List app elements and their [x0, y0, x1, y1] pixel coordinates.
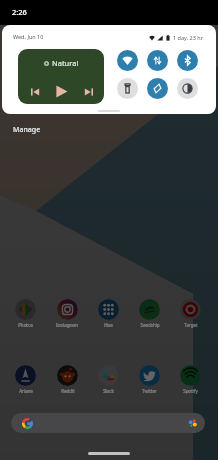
button[interactable]: Twitter — [139, 365, 160, 386]
staticText: Spotify — [183, 388, 198, 394]
button[interactable]: Natural — [18, 49, 104, 104]
button[interactable]: Play — [53, 83, 70, 100]
button[interactable]: Wi-Fi — [117, 50, 138, 71]
button[interactable]: Spotify — [180, 365, 201, 386]
button[interactable]: Instagram — [57, 299, 78, 320]
button[interactable]: Search — [11, 413, 205, 433]
button[interactable]: Auto-rotate — [147, 78, 168, 99]
button[interactable]: Manage — [13, 125, 41, 135]
button[interactable]: Bluetooth — [177, 50, 198, 71]
button[interactable]: Next track — [80, 83, 97, 100]
button[interactable]: Ariane — [15, 365, 36, 386]
button[interactable]: Slack — [98, 365, 119, 386]
staticText: 2:26 — [12, 7, 27, 17]
button[interactable]: Seedship — [139, 299, 160, 320]
button[interactable]: Previous track — [26, 83, 43, 100]
staticText: Photos — [18, 322, 33, 328]
button[interactable]: Flashlight — [117, 78, 138, 99]
staticText: Instagram — [56, 322, 78, 328]
staticText: Twitter — [142, 388, 157, 394]
staticText: Natural — [52, 58, 79, 68]
staticText: Reddit — [61, 388, 75, 394]
button[interactable]: Mobile data — [147, 50, 168, 71]
staticText: Ariane — [19, 388, 33, 394]
staticText: Slack — [103, 388, 114, 394]
button[interactable]: Target — [180, 299, 201, 320]
staticText: Wed, Jun 10 — [13, 33, 44, 40]
staticText: Target — [184, 322, 198, 328]
button[interactable]: Dark theme — [177, 78, 198, 99]
button[interactable]: Reddit — [57, 365, 78, 386]
staticText: Hue — [104, 322, 113, 328]
button[interactable]: Hue — [98, 299, 119, 320]
staticText: 1 day, 23 hr — [173, 34, 203, 41]
staticText: Seedship — [140, 322, 160, 328]
button[interactable]: Photos — [15, 299, 36, 320]
